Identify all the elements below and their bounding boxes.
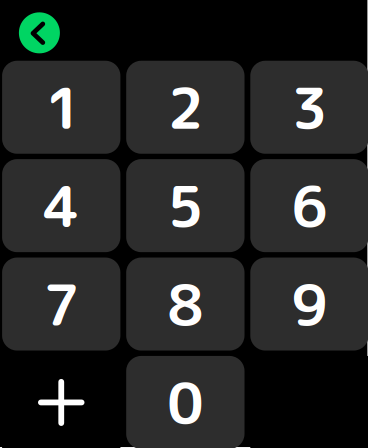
button[interactable]: 9: [250, 258, 368, 351]
button[interactable]: 7: [2, 258, 120, 351]
staticText: 9: [291, 264, 327, 344]
button[interactable]: 2: [126, 61, 244, 154]
staticText: 7: [43, 264, 79, 344]
staticText: 8: [167, 264, 203, 344]
staticText: 0: [167, 363, 203, 442]
button[interactable]: 0: [126, 356, 244, 448]
staticText: 2: [167, 68, 203, 147]
button[interactable]: Back: [19, 12, 60, 53]
staticText: 1: [45, 68, 81, 147]
button[interactable]: 8: [126, 258, 244, 351]
staticText: 4: [43, 166, 79, 245]
button[interactable]: 1: [2, 61, 120, 154]
staticText: 5: [167, 166, 203, 245]
button[interactable]: 6: [250, 159, 368, 252]
button[interactable]: Plus: [2, 356, 120, 448]
button[interactable]: 3: [250, 61, 368, 154]
button[interactable]: 4: [2, 159, 120, 252]
staticText: 6: [291, 166, 327, 245]
button[interactable]: 5: [126, 159, 244, 252]
staticText: 3: [291, 68, 327, 147]
